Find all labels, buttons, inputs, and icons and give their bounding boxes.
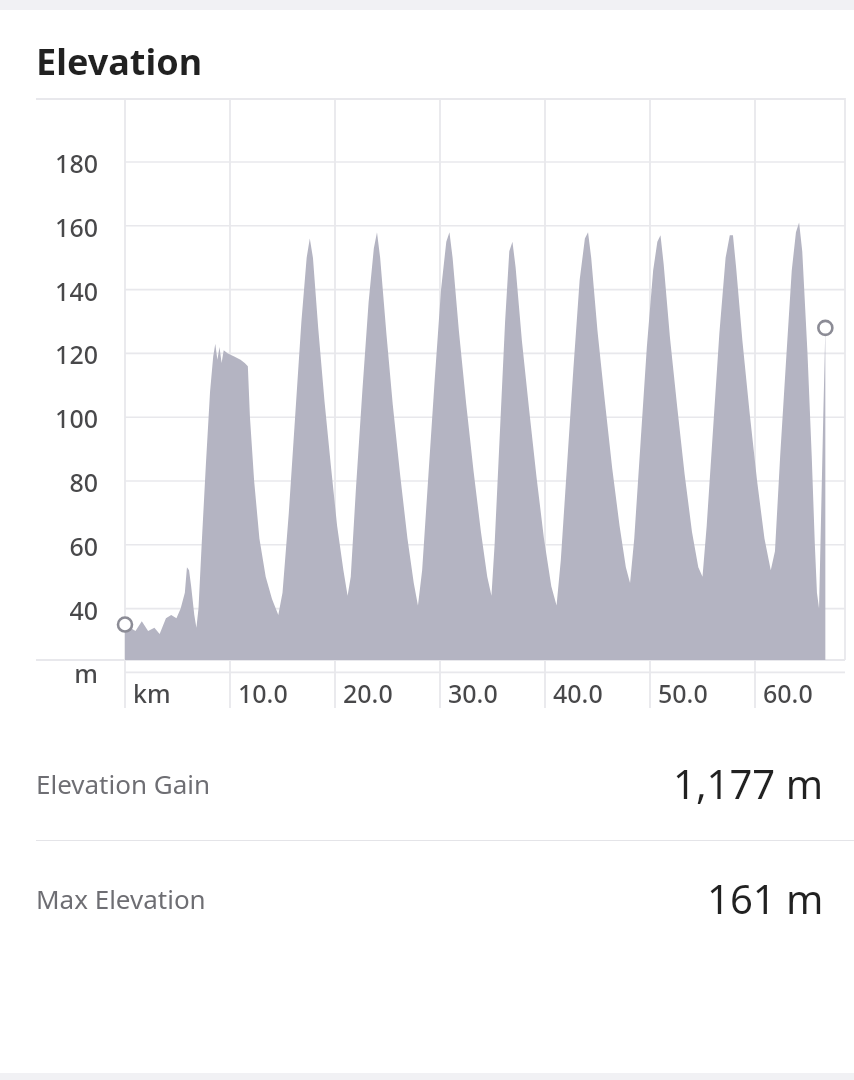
staticText: 40 [0, 593, 98, 627]
button[interactable]: Elevation Gain [0, 753, 854, 813]
staticText: 80 [0, 465, 98, 499]
other: Elevation profile chart [0, 98, 854, 708]
staticText: 140 [0, 274, 98, 308]
button[interactable]: Max Elevation [0, 868, 854, 928]
staticText: 1,177 m [673, 756, 824, 810]
staticText: 60 [0, 529, 98, 563]
staticText: Elevation Gain [36, 766, 211, 801]
staticText: 180 [0, 146, 98, 180]
staticText: 60.0 [763, 676, 813, 710]
staticText: 100 [0, 401, 98, 435]
staticText: 50.0 [658, 676, 708, 710]
staticText: 120 [0, 337, 98, 371]
staticText: Max Elevation [36, 881, 206, 916]
staticText: m [0, 656, 98, 690]
staticText: 161 m [707, 871, 824, 925]
staticText: 10.0 [238, 676, 288, 710]
staticText: Elevation [36, 37, 203, 86]
staticText: km [133, 676, 171, 710]
staticText: 40.0 [553, 676, 603, 710]
staticText: 30.0 [448, 676, 498, 710]
staticText: 20.0 [343, 676, 393, 710]
staticText: 160 [0, 210, 98, 244]
